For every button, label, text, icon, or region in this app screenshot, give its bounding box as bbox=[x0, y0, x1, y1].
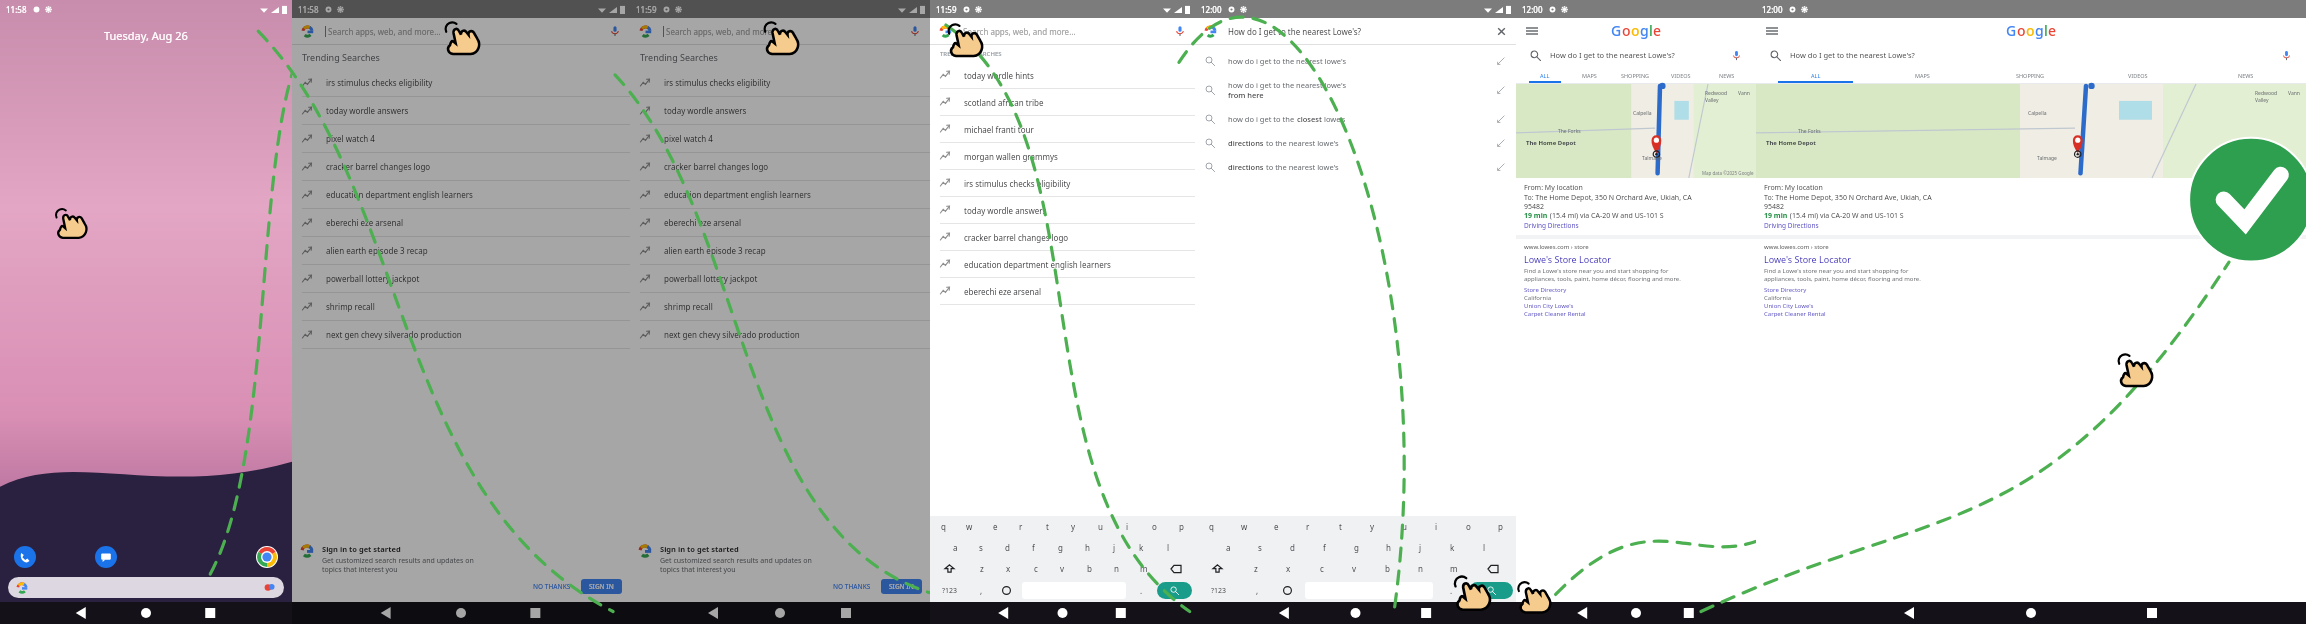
button[interactable]: f bbox=[1308, 537, 1340, 558]
button[interactable]: . bbox=[1129, 579, 1154, 602]
button[interactable]: g bbox=[1047, 537, 1074, 558]
button[interactable]: cracker barrel changes logo bbox=[930, 224, 1195, 250]
button[interactable]: m bbox=[1437, 558, 1470, 579]
button[interactable]: Phone bbox=[14, 546, 36, 568]
button[interactable]: l bbox=[1468, 537, 1500, 558]
button[interactable]: Backspace bbox=[1470, 558, 1516, 579]
button[interactable]: Carpet Cleaner Rental bbox=[1524, 310, 1586, 318]
button[interactable]: z bbox=[968, 558, 995, 579]
button[interactable]: s bbox=[1244, 537, 1276, 558]
button[interactable]: h bbox=[1074, 537, 1101, 558]
button[interactable]: education department english learners bbox=[930, 251, 1195, 277]
button[interactable]: eberechi eze arsenal bbox=[930, 278, 1195, 304]
button[interactable]: t bbox=[1034, 516, 1060, 537]
button[interactable]: Menu bbox=[1764, 23, 1780, 39]
button[interactable]: eberechi eze arsenal bbox=[630, 209, 930, 236]
button[interactable]: Union City Lowe's bbox=[1764, 302, 1814, 310]
button[interactable]: Clear bbox=[1496, 26, 1507, 37]
button[interactable]: p bbox=[1484, 516, 1516, 537]
button[interactable]: eberechi eze arsenal bbox=[292, 209, 630, 236]
button[interactable]: scotland african tribe bbox=[930, 89, 1195, 115]
button[interactable]: Emoji bbox=[1272, 579, 1302, 602]
button[interactable]: i bbox=[1114, 516, 1141, 537]
button[interactable]: y bbox=[1060, 516, 1087, 537]
button[interactable]: How do I get to the nearest Lowe's? bbox=[1195, 18, 1516, 44]
button[interactable]: n bbox=[1103, 558, 1130, 579]
button[interactable]: Voice search bbox=[909, 25, 921, 37]
button[interactable]: pixel watch 4 bbox=[630, 125, 930, 152]
button[interactable]: powerball lottery jackpot bbox=[292, 265, 630, 292]
button[interactable]: c bbox=[1022, 558, 1049, 579]
button[interactable]: Search apps, web, and more… bbox=[292, 18, 630, 44]
button[interactable]: today wordle answers bbox=[292, 97, 630, 124]
button[interactable]: ?123 bbox=[930, 579, 969, 602]
button[interactable]: x bbox=[1272, 558, 1305, 579]
button[interactable]: pixel watch 4 bbox=[292, 125, 630, 152]
button[interactable]: today wordle answers bbox=[930, 197, 1195, 223]
button[interactable]: ALL bbox=[1522, 67, 1567, 83]
button[interactable]: a bbox=[1212, 537, 1244, 558]
button[interactable]: m bbox=[1130, 558, 1157, 579]
button[interactable]: j bbox=[1404, 537, 1436, 558]
button[interactable]: d bbox=[1276, 537, 1308, 558]
button[interactable]: SIGN IN bbox=[581, 579, 622, 594]
button[interactable]: b bbox=[1371, 558, 1404, 579]
button[interactable]: j bbox=[1101, 537, 1128, 558]
button[interactable]: Menu bbox=[1524, 23, 1540, 39]
button[interactable]: o bbox=[1452, 516, 1484, 537]
button[interactable]: b bbox=[1076, 558, 1103, 579]
button[interactable]: MAPS bbox=[1567, 67, 1612, 83]
button[interactable]: today wordle answers bbox=[630, 97, 930, 124]
button[interactable]: d bbox=[994, 537, 1020, 558]
button[interactable]: . bbox=[1436, 579, 1466, 602]
button[interactable]: Voice search bbox=[609, 25, 621, 37]
button[interactable]: w bbox=[1228, 516, 1260, 537]
button[interactable]: How do I get to the nearest Lowe's? bbox=[1762, 43, 2300, 67]
button[interactable]: cracker barrel changes logo bbox=[630, 153, 930, 180]
button[interactable]: p bbox=[1168, 516, 1195, 537]
button[interactable]: Lowe's Store Locator bbox=[1764, 253, 1851, 265]
button[interactable]: powerball lottery jackpot bbox=[630, 265, 930, 292]
button[interactable]: y bbox=[1356, 516, 1388, 537]
button[interactable]: Search bbox=[1157, 582, 1192, 599]
button[interactable]: VIDEOS bbox=[2084, 67, 2192, 83]
button[interactable]: k bbox=[1128, 537, 1155, 558]
button[interactable]: a bbox=[942, 537, 968, 558]
button[interactable]: Voice search bbox=[1174, 25, 1186, 37]
button[interactable]: Messages bbox=[95, 546, 117, 568]
button[interactable]: u bbox=[1388, 516, 1420, 537]
button[interactable]: shrimp recall bbox=[630, 293, 930, 320]
button[interactable]: how do i get to the nearest lowe's bbox=[1195, 73, 1516, 107]
button[interactable]: e bbox=[1260, 516, 1292, 537]
button[interactable]: today wordle hints bbox=[930, 62, 1195, 88]
button[interactable]: michael franti tour bbox=[930, 116, 1195, 142]
button[interactable]: shrimp recall bbox=[292, 293, 630, 320]
button[interactable]: ALL bbox=[1762, 67, 1869, 83]
button[interactable]: education department english learners bbox=[630, 181, 930, 208]
button[interactable]: i bbox=[1420, 516, 1452, 537]
button[interactable]: n bbox=[1404, 558, 1437, 579]
button[interactable]: ?123 bbox=[1195, 579, 1242, 602]
button[interactable]: MAPS bbox=[1869, 67, 1976, 83]
button[interactable]: NO THANKS bbox=[527, 579, 577, 594]
button[interactable]: v bbox=[1049, 558, 1076, 579]
button[interactable]: q bbox=[1195, 516, 1228, 537]
button[interactable]: q bbox=[930, 516, 956, 537]
button[interactable]: Shift bbox=[1195, 558, 1240, 579]
button[interactable]: z bbox=[1240, 558, 1272, 579]
button[interactable]: next gen chevy silverado production bbox=[292, 321, 630, 348]
button[interactable]: Chrome bbox=[256, 546, 278, 568]
button[interactable]: VIDEOS bbox=[1658, 67, 1704, 83]
button[interactable]: SHOPPING bbox=[1612, 67, 1658, 83]
button[interactable]: Store Directory bbox=[1764, 286, 1807, 294]
button[interactable]: , bbox=[969, 579, 994, 602]
button[interactable]: e bbox=[982, 516, 1008, 537]
button[interactable]: education department english learners bbox=[292, 181, 630, 208]
button[interactable]: c bbox=[1305, 558, 1338, 579]
button[interactable]: Carpet Cleaner Rental bbox=[1764, 310, 1826, 318]
button[interactable]: k bbox=[1436, 537, 1468, 558]
button[interactable]: morgan wallen grammys bbox=[930, 143, 1195, 169]
button[interactable]: , bbox=[1242, 579, 1272, 602]
button[interactable]: irs stimulus checks eligibility bbox=[630, 69, 930, 96]
